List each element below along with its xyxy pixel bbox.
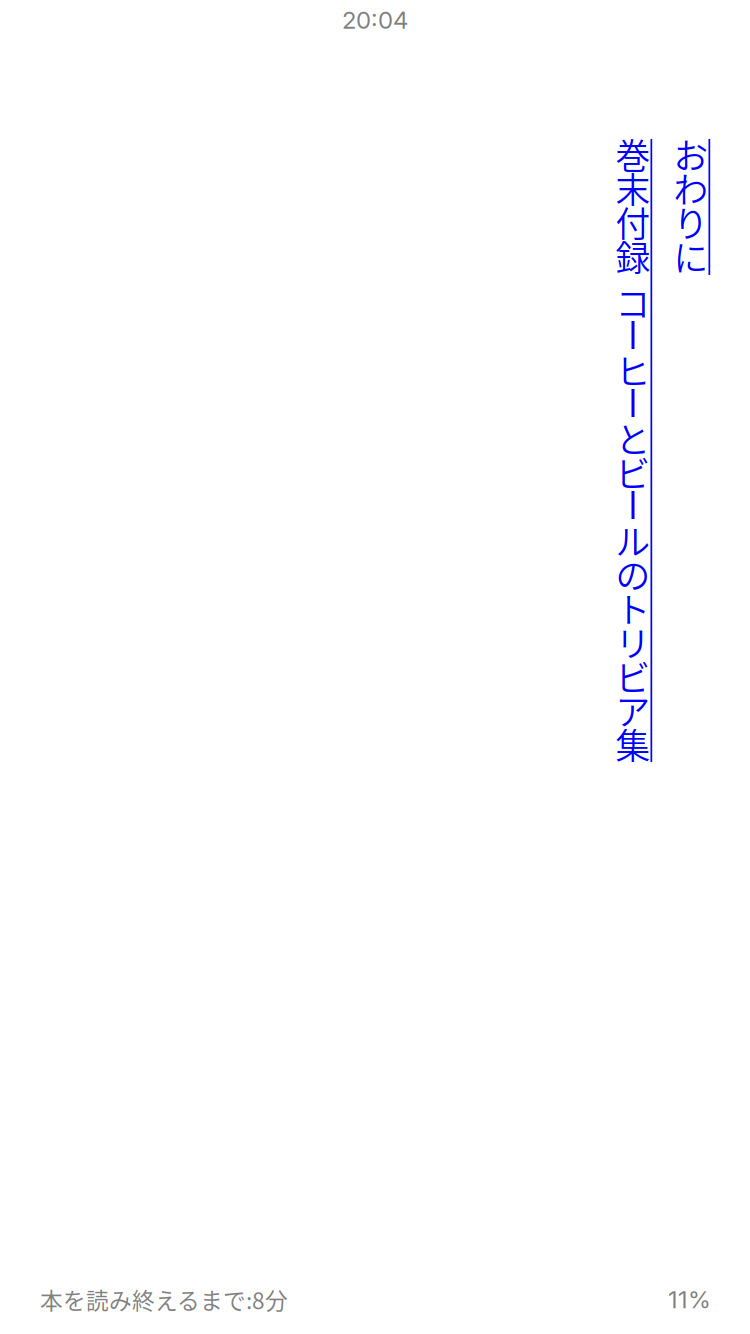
button[interactable]: 巻末付録 コーヒーとビールのトリビア集 — [616, 139, 650, 763]
staticText: コ — [615, 277, 650, 327]
staticText: リ — [615, 617, 650, 667]
staticText: ビ — [615, 447, 650, 497]
staticText: 11% — [668, 1285, 711, 1314]
staticText: 20:04 — [342, 5, 408, 34]
staticText: ヒ — [615, 345, 650, 395]
staticText: の — [615, 549, 650, 599]
staticText: ル — [615, 515, 650, 565]
staticText: 付 — [615, 197, 650, 247]
staticText: 集 — [615, 719, 650, 769]
staticText: 録 — [615, 231, 650, 281]
staticText: に — [673, 231, 708, 281]
button[interactable]: おわりに — [674, 139, 708, 275]
staticText: 末 — [615, 163, 650, 213]
staticText: 巻 — [615, 129, 650, 179]
staticText: わ — [673, 163, 708, 213]
staticText: 本を読み終えるまで:8分 — [40, 1283, 288, 1316]
staticText: ビ — [615, 651, 650, 701]
staticText: と — [615, 413, 650, 463]
staticText: お — [673, 129, 708, 179]
staticText: ト — [615, 583, 650, 633]
staticText: り — [673, 197, 708, 247]
staticText: ア — [615, 685, 650, 735]
